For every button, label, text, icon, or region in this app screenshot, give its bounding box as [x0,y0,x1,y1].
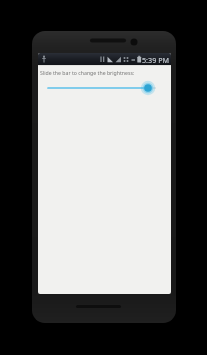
staticText: Slide the bar to change the brightness: [40,69,135,76]
button[interactable] [42,79,162,97]
staticText: 5:39 PM [142,55,169,65]
